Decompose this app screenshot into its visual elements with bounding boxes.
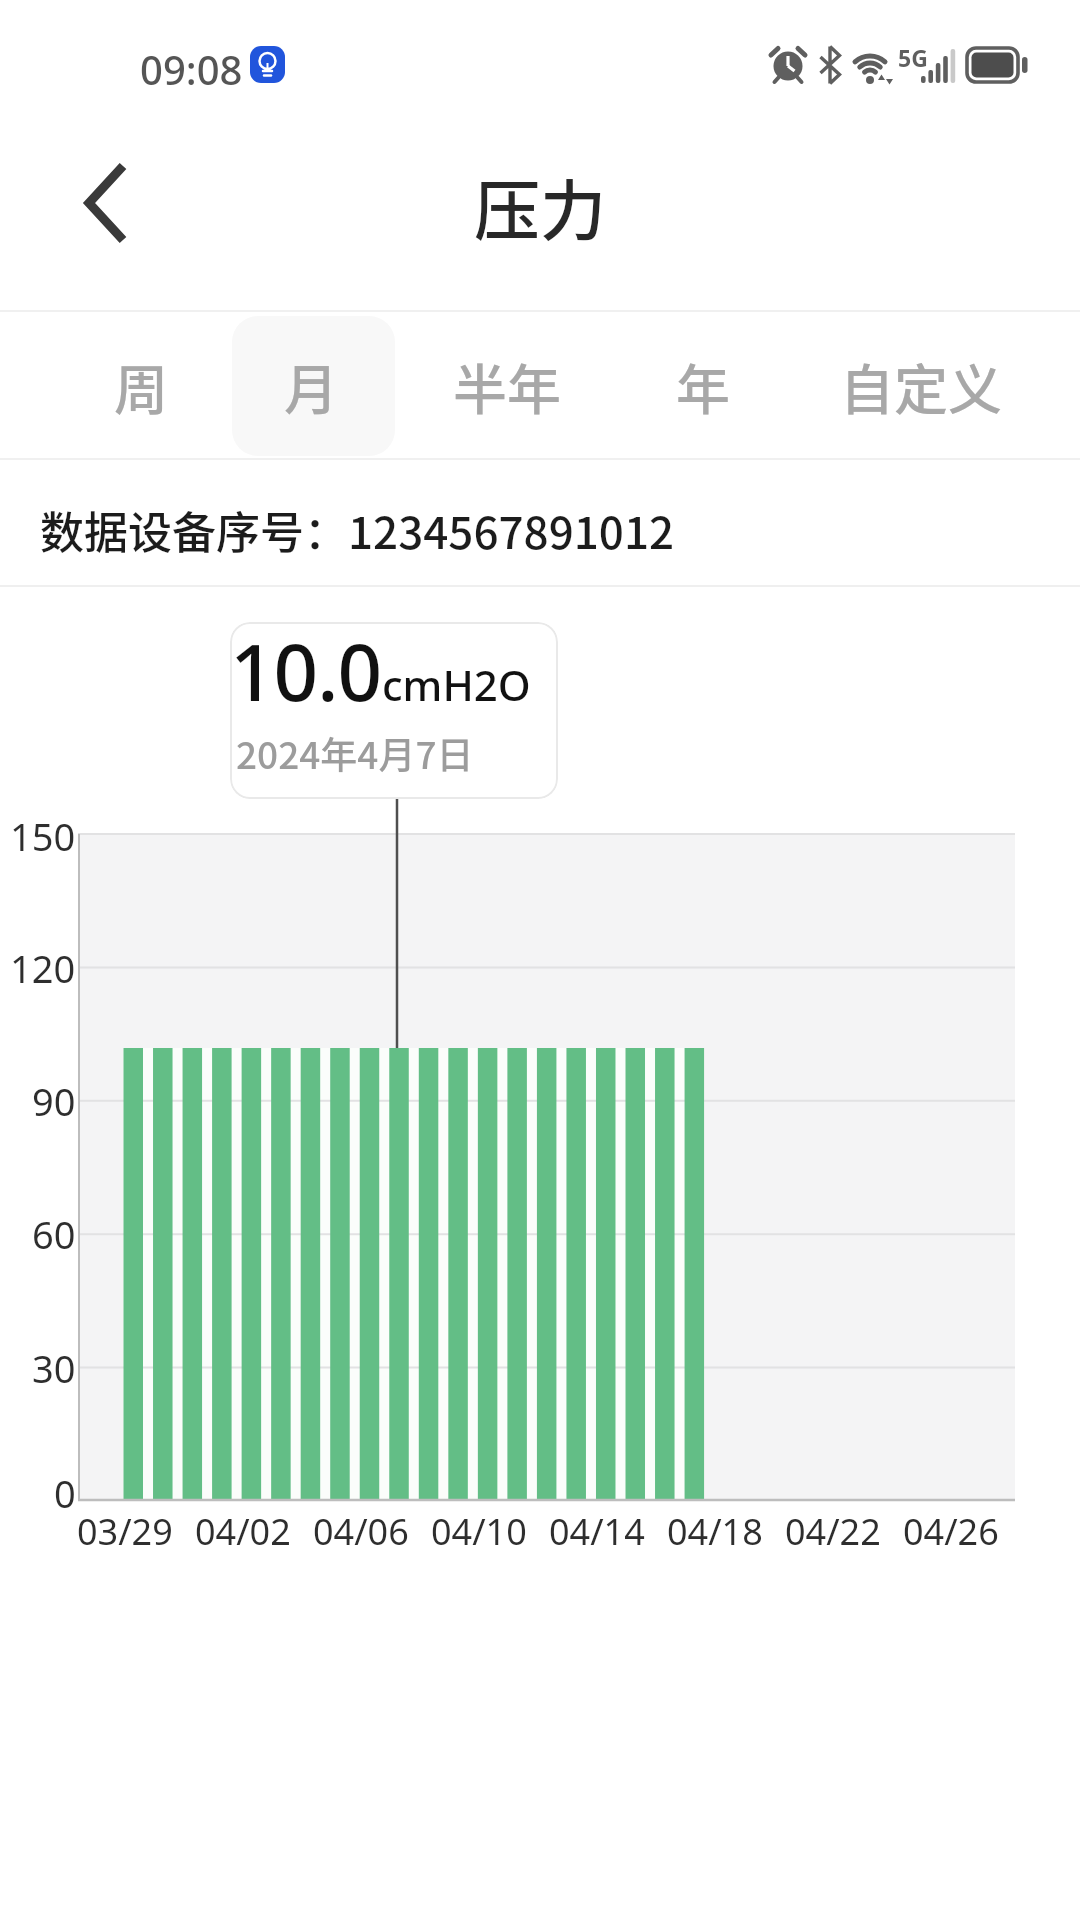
- button[interactable]: 自定义: [796, 316, 1046, 456]
- staticText: 10.0: [230, 622, 382, 724]
- staticText: 5G: [898, 42, 928, 73]
- staticText: 年: [676, 347, 730, 425]
- staticText: 2024年4月7日: [236, 726, 474, 780]
- staticText: cmH2O: [382, 656, 531, 713]
- staticText: 04/26: [903, 1507, 999, 1556]
- staticText: 04/02: [195, 1507, 291, 1556]
- staticText: 月: [284, 347, 338, 425]
- staticText: 04/22: [785, 1507, 881, 1556]
- button[interactable]: 月: [236, 316, 386, 456]
- button[interactable]: 半年: [412, 316, 602, 456]
- staticText: 03/29: [77, 1507, 173, 1556]
- staticText: 0: [54, 1467, 76, 1519]
- staticText: 自定义: [840, 347, 1002, 425]
- staticText: 04/18: [667, 1507, 763, 1556]
- staticText: 数据设备序号：1234567891012: [40, 498, 675, 562]
- staticText: 半年: [453, 347, 561, 425]
- staticText: 30: [32, 1342, 76, 1394]
- staticText: 150: [10, 810, 76, 862]
- staticText: 04/10: [431, 1507, 527, 1556]
- staticText: 周: [114, 347, 168, 425]
- staticText: 60: [32, 1208, 76, 1260]
- staticText: 压力: [474, 158, 606, 250]
- staticText: 120: [10, 942, 76, 994]
- staticText: 04/06: [313, 1507, 409, 1556]
- button[interactable]: 周: [66, 316, 216, 456]
- button[interactable]: 年: [628, 316, 778, 456]
- button[interactable]: [78, 160, 130, 246]
- staticText: 04/14: [549, 1507, 645, 1556]
- staticText: 09:08: [140, 42, 243, 96]
- staticText: 90: [32, 1075, 76, 1127]
